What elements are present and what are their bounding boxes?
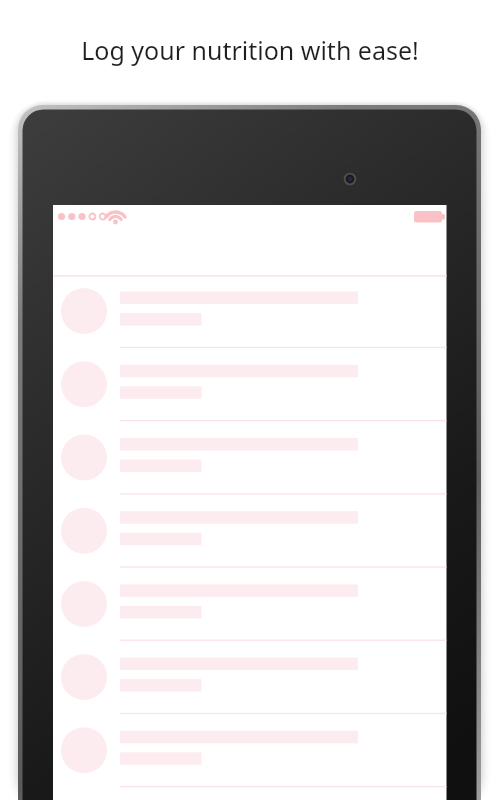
button[interactable]: Nutrition log list preview — [0, 0, 500, 800]
staticText: Log your nutrition with ease! — [0, 33, 500, 67]
